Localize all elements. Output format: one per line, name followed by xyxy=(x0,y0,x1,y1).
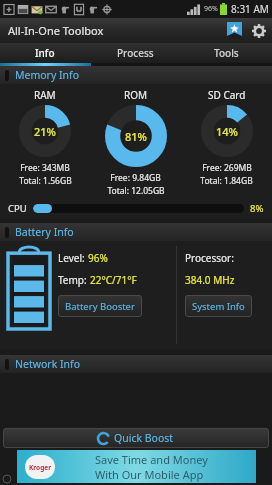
staticText: Free: 343MB xyxy=(20,162,70,174)
staticText: RAM xyxy=(34,88,56,102)
staticText: 8:31 AM xyxy=(231,2,269,16)
staticText: Processor: xyxy=(185,251,234,265)
staticText: Battery Booster xyxy=(65,300,135,313)
staticText: Save Time and Money xyxy=(95,452,208,467)
button[interactable]: Battery Info xyxy=(0,223,272,241)
staticText: Quick Boost xyxy=(114,431,174,445)
staticText: Tools xyxy=(214,46,239,60)
staticText: 21% xyxy=(34,124,56,139)
staticText: System Info xyxy=(192,300,245,313)
staticText: 8% xyxy=(250,202,264,215)
button[interactable]: Tools xyxy=(181,43,272,63)
button[interactable]: Settings xyxy=(246,18,272,43)
staticText: Process xyxy=(117,46,154,60)
button[interactable]: Quick Boost xyxy=(3,428,269,448)
staticText: With Our Mobile App xyxy=(95,467,204,482)
staticText: Battery Info xyxy=(15,225,74,239)
button[interactable]: CPU xyxy=(8,197,264,219)
staticText: Level: xyxy=(58,251,88,265)
button[interactable]: SD Card xyxy=(181,88,272,187)
staticText: Free: 269MB xyxy=(202,162,252,174)
staticText: 384.0 MHz xyxy=(185,273,235,287)
button[interactable]: Favorites xyxy=(222,18,246,43)
staticText: All-In-One Toolbox xyxy=(8,23,104,38)
button[interactable]: Network Info xyxy=(0,355,272,373)
button[interactable]: Advertisement xyxy=(17,450,256,483)
staticText: 81% xyxy=(125,129,147,144)
staticText: Network Info xyxy=(15,357,80,371)
staticText: Memory Info xyxy=(15,68,80,82)
button[interactable]: RAM xyxy=(0,88,90,187)
button[interactable]: Process xyxy=(90,43,181,63)
staticText: Kroger xyxy=(29,463,52,472)
staticText: CPU xyxy=(8,202,27,215)
staticText: Total: 1.56GB xyxy=(19,175,72,187)
button[interactable]: ROM xyxy=(90,88,181,197)
staticText: Total: 12.05GB xyxy=(107,185,165,197)
staticText: ROM xyxy=(124,88,148,102)
staticText: 14% xyxy=(216,124,238,139)
button[interactable]: Battery Booster xyxy=(58,295,142,317)
button[interactable]: Memory Info xyxy=(0,66,272,84)
staticText: 96% xyxy=(204,4,218,14)
staticText: SD Card xyxy=(208,88,246,102)
staticText: 22°C/71°F xyxy=(90,273,137,287)
staticText: Total: 1.84GB xyxy=(200,175,253,187)
staticText: Info xyxy=(35,46,55,60)
staticText: Free: 9.84GB xyxy=(110,172,161,184)
staticText: Temp: xyxy=(58,273,90,287)
button[interactable]: System Info xyxy=(185,295,252,317)
staticText: 96% xyxy=(88,251,108,265)
button[interactable]: Info xyxy=(0,43,90,63)
